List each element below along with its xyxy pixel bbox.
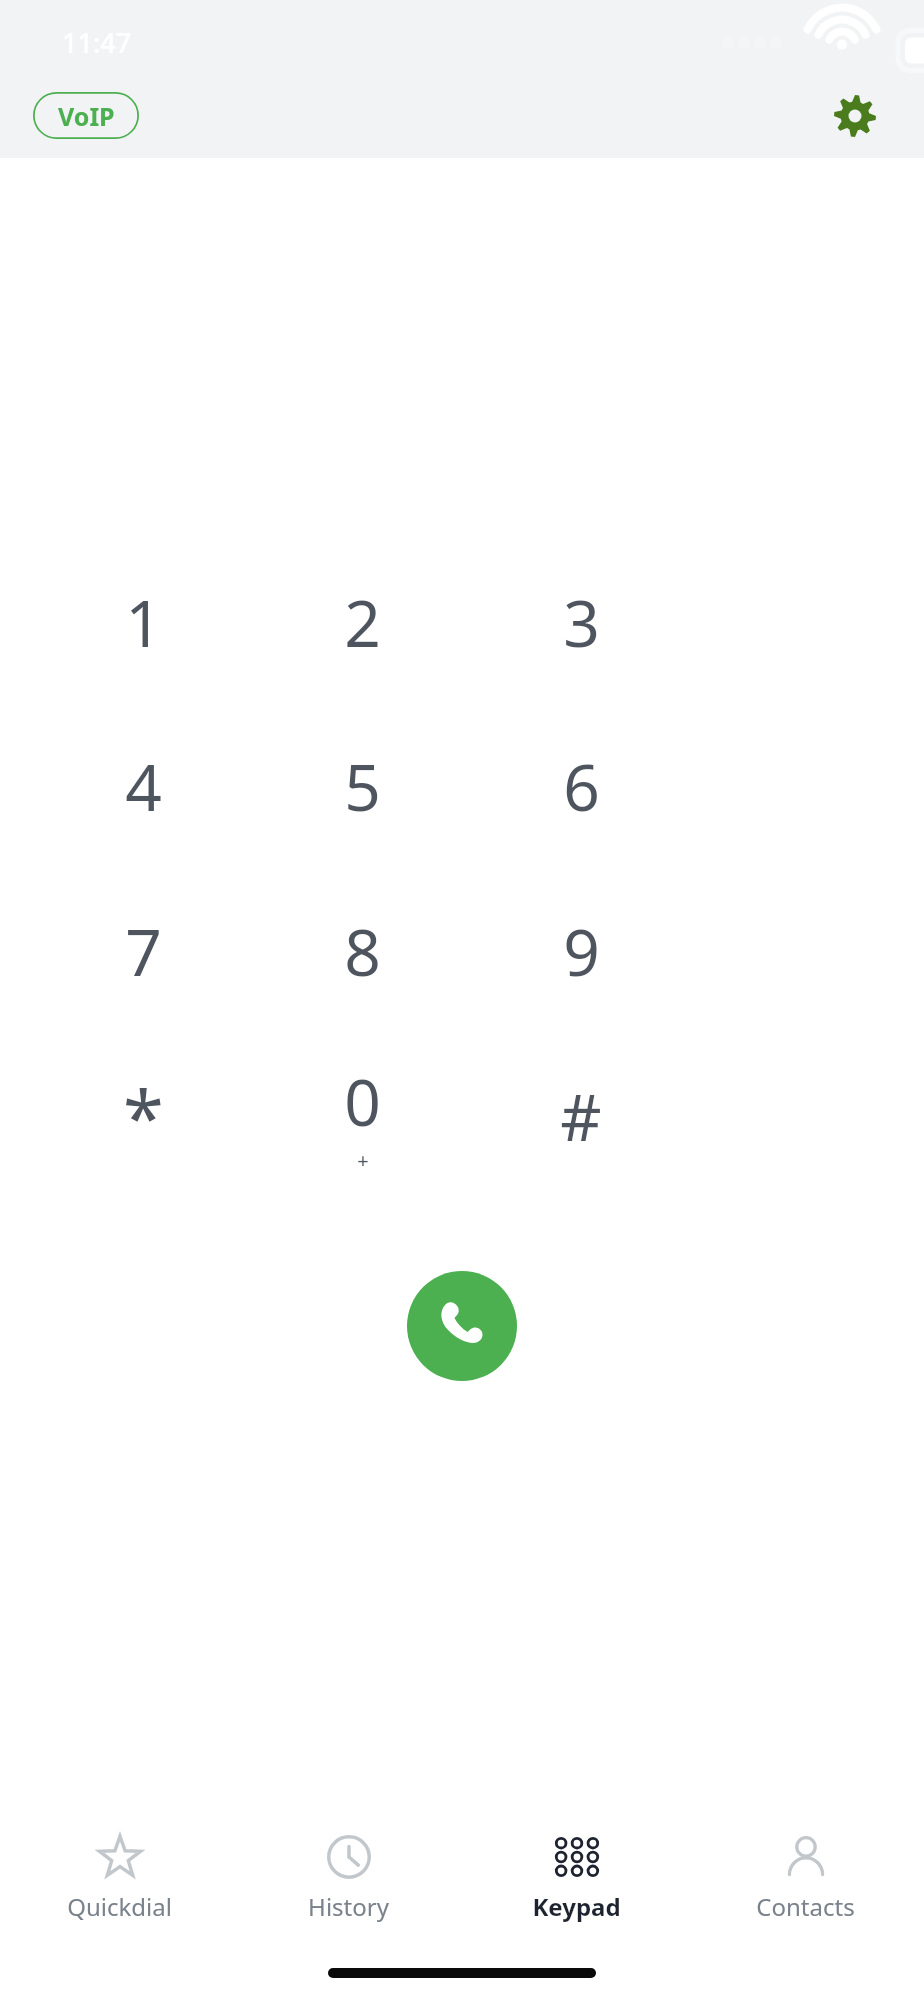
staticText: Contacts bbox=[756, 1890, 855, 1923]
button[interactable]: Contacts bbox=[695, 1818, 915, 1938]
staticText: 11:47 bbox=[62, 24, 132, 61]
button[interactable]: # bbox=[481, 1041, 681, 1191]
staticText: # bbox=[560, 1073, 602, 1160]
staticText: 9 bbox=[563, 908, 600, 995]
button[interactable]: 2 bbox=[262, 547, 462, 697]
staticText: 4 bbox=[125, 743, 162, 830]
staticText: History bbox=[308, 1890, 389, 1923]
button[interactable]: 5 bbox=[262, 711, 462, 861]
staticText: VoIP bbox=[58, 99, 115, 133]
staticText: 3 bbox=[563, 579, 600, 666]
staticText: Keypad bbox=[532, 1890, 621, 1923]
button[interactable]: 0 bbox=[262, 1041, 462, 1191]
button[interactable]: 4 bbox=[43, 711, 243, 861]
staticText: 6 bbox=[563, 743, 600, 830]
staticText: 8 bbox=[344, 908, 381, 995]
button[interactable]: 1 bbox=[43, 547, 243, 697]
button[interactable]: Settings bbox=[827, 88, 883, 144]
button[interactable]: 9 bbox=[481, 876, 681, 1026]
button[interactable]: 8 bbox=[262, 876, 462, 1026]
staticText: Quickdial bbox=[67, 1890, 172, 1923]
button[interactable]: Keypad bbox=[466, 1818, 686, 1938]
staticText: 1 bbox=[125, 579, 162, 666]
staticText: 0 bbox=[344, 1058, 381, 1145]
button[interactable]: Quickdial bbox=[9, 1818, 229, 1938]
button[interactable]: * bbox=[43, 1041, 243, 1191]
button[interactable]: 3 bbox=[481, 547, 681, 697]
button[interactable]: 7 bbox=[43, 876, 243, 1026]
button[interactable]: Call bbox=[407, 1271, 517, 1381]
staticText: 5 bbox=[344, 743, 381, 830]
button[interactable]: History bbox=[238, 1818, 458, 1938]
staticText: 7 bbox=[125, 908, 162, 995]
staticText: * bbox=[123, 1066, 164, 1167]
staticText: 2 bbox=[344, 579, 381, 666]
button[interactable]: VoIP bbox=[33, 92, 139, 139]
button[interactable]: 6 bbox=[481, 711, 681, 861]
staticText: + bbox=[357, 1147, 369, 1174]
